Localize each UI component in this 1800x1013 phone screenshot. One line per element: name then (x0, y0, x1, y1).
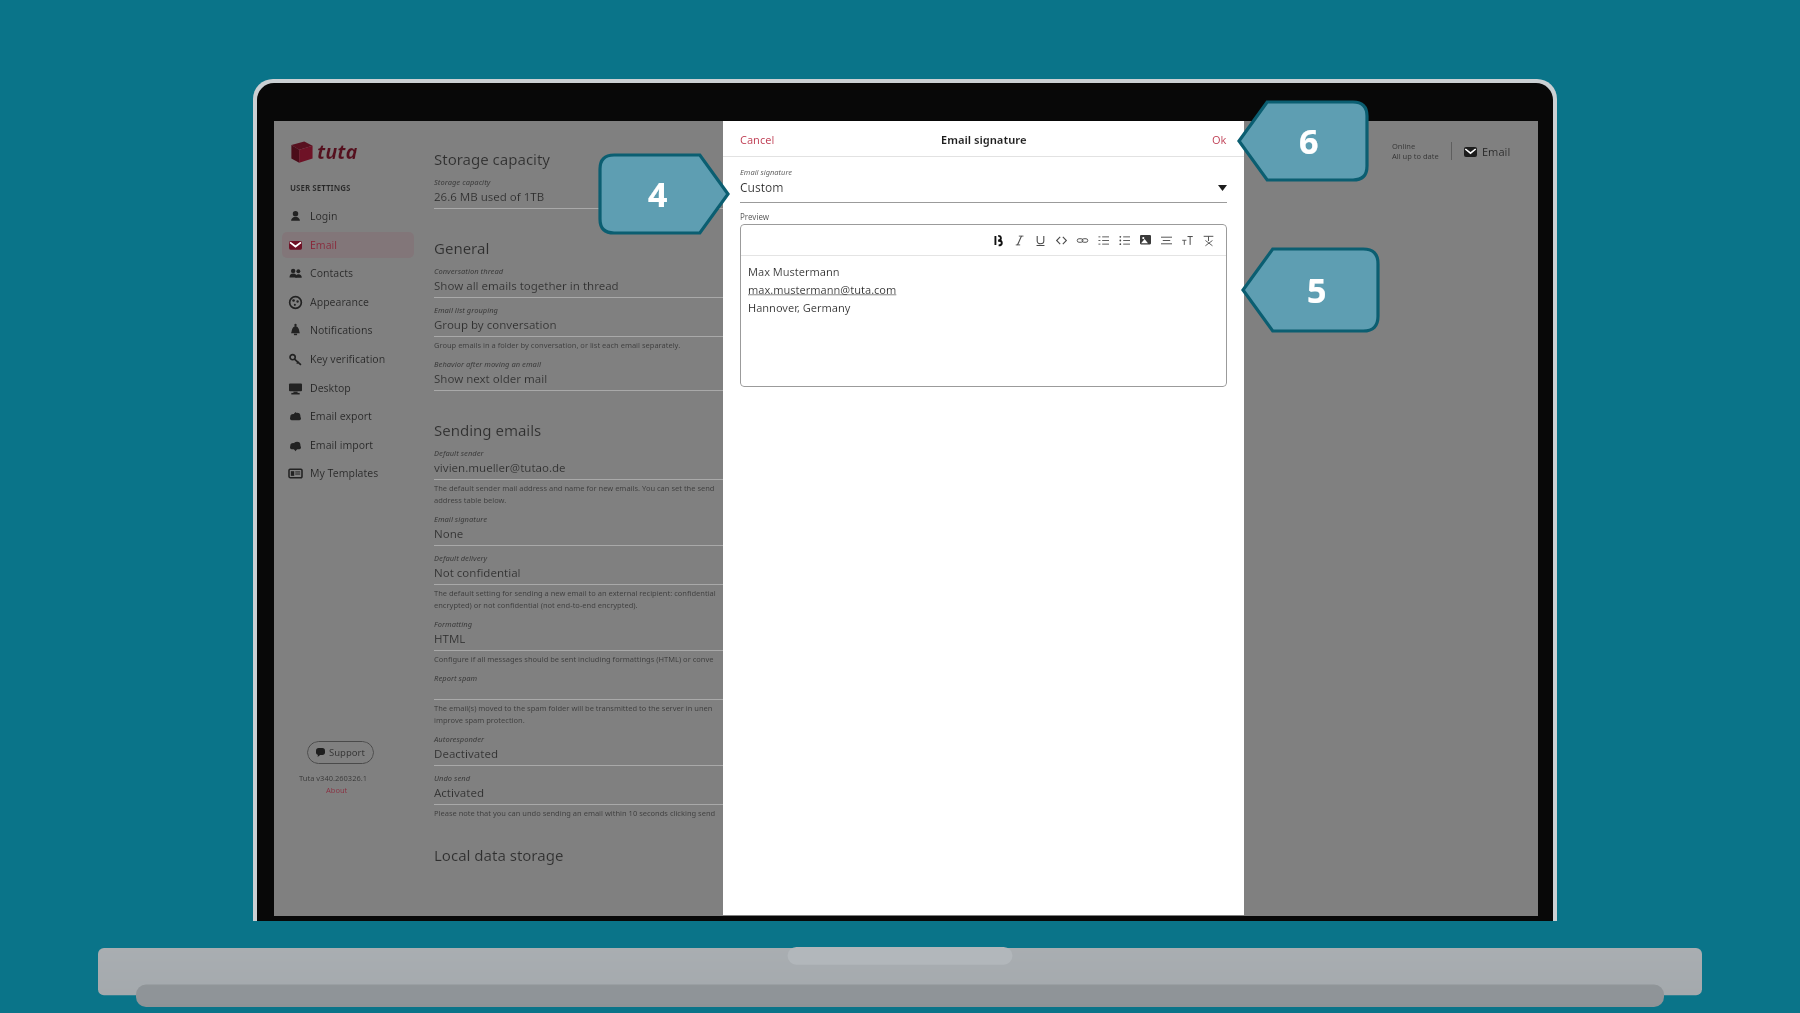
staticText: Support (329, 746, 365, 759)
staticText: The email(s) moved to the spam folder wi… (434, 703, 713, 713)
staticText: Notifications (310, 323, 373, 337)
staticText: Preview (740, 211, 770, 222)
staticText: The default sender mail address and name… (434, 483, 715, 493)
button[interactable]: Autoresponder (434, 734, 764, 773)
staticText: Default delivery (434, 553, 488, 563)
button[interactable]: Ok (1212, 132, 1227, 147)
staticText: 5 (1307, 267, 1327, 313)
staticText: Local data storage (434, 845, 564, 865)
button[interactable]: Login (282, 203, 414, 229)
staticText: None (434, 526, 464, 542)
button[interactable]: Bold (988, 231, 1009, 249)
button[interactable]: About (326, 785, 348, 795)
staticText: Group emails in a folder by conversation… (434, 340, 681, 350)
staticText: Formatting (434, 619, 473, 629)
staticText: Hannover, Germany (748, 300, 851, 315)
button[interactable]: Font size (1177, 231, 1198, 249)
button[interactable]: Desktop (282, 375, 414, 401)
staticText: Login (310, 209, 338, 223)
button[interactable]: Undo send (434, 773, 764, 827)
staticText: Contacts (310, 266, 354, 280)
staticText: Max Mustermann (748, 264, 840, 279)
button[interactable]: Email signature (740, 167, 1227, 203)
button[interactable]: Underline (1030, 231, 1051, 249)
staticText: Custom (740, 179, 784, 195)
staticText: Storage capacity (434, 177, 491, 187)
button[interactable]: Numbered list (1093, 231, 1114, 249)
staticText: Conversation thread (434, 266, 504, 276)
staticText: Appearance (310, 295, 369, 309)
staticText: Undo send (434, 773, 471, 783)
button[interactable]: Code (1051, 231, 1072, 249)
staticText: max.mustermann@tuta.com (748, 282, 897, 297)
button[interactable]: Report spam (434, 673, 764, 734)
button[interactable]: Link (1072, 231, 1093, 249)
button[interactable]: Email (1464, 144, 1511, 159)
staticText: tuta (317, 138, 358, 165)
staticText: All up to date (1392, 151, 1439, 161)
staticText: Email list grouping (434, 305, 498, 315)
button[interactable]: Email signature (434, 514, 764, 553)
button[interactable]: Appearance (282, 289, 414, 315)
staticText: Behavior after moving an email (434, 359, 541, 369)
button[interactable]: Insert image (1135, 231, 1156, 249)
staticText: Email (310, 238, 337, 252)
staticText: Configure if all messages should be sent… (434, 654, 714, 664)
staticText: Email signature (434, 514, 488, 524)
staticText: Email (1482, 144, 1511, 159)
button[interactable]: Email export (282, 403, 414, 429)
button[interactable]: Clear formatting (1198, 231, 1219, 249)
staticText: Please note that you can undo sending an… (434, 808, 716, 818)
button[interactable]: Behavior after moving an email (434, 359, 764, 398)
button[interactable]: Email import (282, 432, 414, 458)
staticText: Email export (310, 409, 372, 423)
button[interactable]: Default delivery (434, 553, 764, 619)
staticText: Show all emails together in thread (434, 278, 619, 294)
staticText: improve spam protection. (434, 715, 525, 725)
staticText: My Templates (310, 466, 379, 480)
staticText: Autoresponder (434, 734, 485, 744)
button[interactable]: Email list grouping (434, 305, 764, 359)
button[interactable]: Support (307, 741, 374, 764)
staticText: Key verification (310, 352, 386, 366)
button[interactable]: Contacts (282, 260, 414, 286)
staticText: Email signature (941, 132, 1027, 147)
staticText: Email signature (740, 167, 793, 177)
staticText: The default setting for sending a new em… (434, 588, 716, 598)
button[interactable]: Italic (1009, 231, 1030, 249)
staticText: HTML (434, 631, 466, 647)
staticText: address table below. (434, 495, 507, 505)
staticText: 26.6 MB used of 1TB (434, 189, 545, 205)
staticText: Report spam (434, 673, 478, 683)
button[interactable]: Cancel (740, 132, 775, 147)
button[interactable]: Email (282, 232, 414, 258)
button[interactable]: Formatting (434, 619, 764, 673)
button[interactable]: Default sender (434, 448, 764, 514)
staticText: Deactivated (434, 746, 498, 762)
staticText: Desktop (310, 381, 351, 395)
staticText: Default sender (434, 448, 484, 458)
staticText: encrypted) or not confidential (not end-… (434, 600, 638, 610)
staticText: 6 (1299, 118, 1319, 164)
staticText: Tuta v340.260326.1 (299, 773, 368, 783)
button[interactable]: My Templates (282, 460, 414, 486)
button[interactable]: Key verification (282, 346, 414, 372)
button[interactable]: Conversation thread (434, 266, 764, 305)
staticText: Sending emails (434, 420, 542, 440)
button[interactable]: Notifications (282, 317, 414, 343)
button[interactable]: Align (1156, 231, 1177, 249)
button[interactable]: Bulleted list (1114, 231, 1135, 249)
staticText: Group by conversation (434, 317, 557, 333)
staticText: Storage capacity (434, 149, 551, 169)
staticText: Show next older mail (434, 371, 548, 387)
staticText: Not confidential (434, 565, 521, 581)
staticText: vivien.mueller@tutao.de (434, 460, 566, 476)
staticText: General (434, 238, 490, 258)
staticText: Email import (310, 438, 374, 452)
staticText: USER SETTINGS (290, 182, 351, 193)
button[interactable]: Storage capacity (434, 177, 764, 216)
staticText: 4 (648, 171, 668, 217)
staticText: Online (1392, 141, 1416, 151)
staticText: Activated (434, 785, 484, 801)
